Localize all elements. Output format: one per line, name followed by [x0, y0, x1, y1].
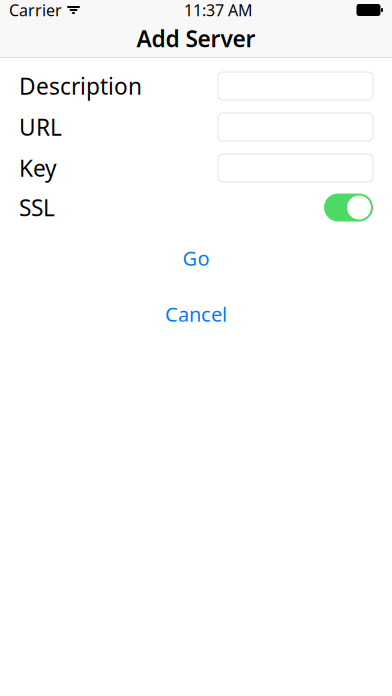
- staticText: SSL: [19, 192, 55, 222]
- staticText: Carrier: [9, 0, 62, 21]
- staticText: 11:37 AM: [184, 0, 253, 21]
- staticText: Add Server: [136, 23, 255, 53]
- staticText: Key: [19, 153, 57, 183]
- staticText: URL: [19, 112, 62, 142]
- staticText: Description: [19, 71, 142, 101]
- staticText: Cancel: [165, 301, 227, 327]
- staticText: Go: [182, 245, 209, 271]
- button[interactable]: SSL: [324, 193, 373, 221]
- button[interactable]: Go: [0, 247, 392, 269]
- button[interactable]: Cancel: [0, 303, 392, 325]
